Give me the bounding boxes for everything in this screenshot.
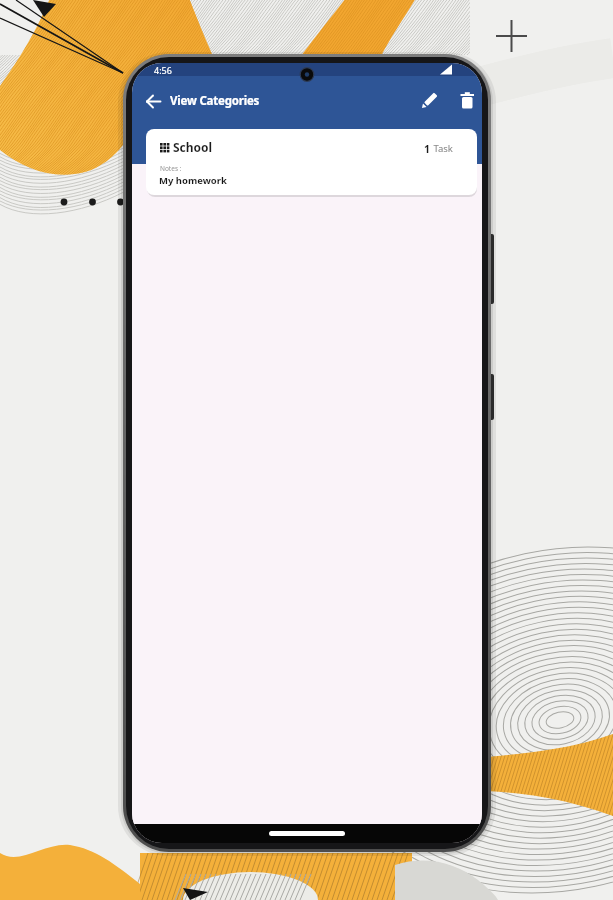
- button[interactable]: [417, 89, 441, 113]
- staticText: 4:56: [154, 64, 172, 76]
- button[interactable]: [455, 89, 479, 113]
- staticText: My homework: [159, 174, 227, 187]
- button[interactable]: [140, 89, 165, 114]
- staticText: Task: [431, 142, 453, 155]
- staticText: 1: [424, 142, 431, 156]
- staticText: Notes :: [160, 164, 182, 173]
- staticText: School: [173, 139, 213, 155]
- button[interactable]: School: [146, 129, 477, 195]
- staticText: View Categories: [170, 93, 260, 109]
